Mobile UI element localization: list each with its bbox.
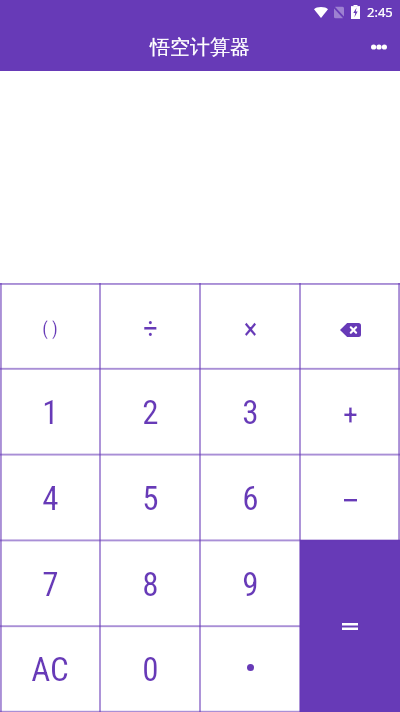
staticText: 2: [142, 393, 159, 432]
staticText: 3: [242, 393, 259, 432]
staticText: 6: [242, 479, 259, 518]
button[interactable]: 3: [200, 369, 300, 455]
button[interactable]: More options: [355, 23, 400, 70]
button[interactable]: Backspace: [300, 283, 400, 369]
button[interactable]: Divide: [100, 283, 200, 369]
staticText: 4: [42, 479, 59, 518]
staticText: 1: [42, 393, 59, 432]
button[interactable]: 5: [100, 455, 200, 541]
staticText: 2:45: [367, 3, 393, 21]
button[interactable]: 6: [200, 455, 300, 541]
button[interactable]: 0: [100, 627, 200, 712]
button[interactable]: Parentheses: [0, 283, 100, 369]
button[interactable]: 9: [200, 541, 300, 627]
staticText: +: [343, 397, 358, 432]
button[interactable]: 7: [0, 541, 100, 627]
staticText: ÷: [143, 311, 158, 346]
button[interactable]: Multiply: [200, 283, 300, 369]
staticText: 8: [142, 565, 159, 604]
staticText: 悟空计算器: [150, 35, 250, 60]
button[interactable]: AC: [0, 627, 100, 712]
staticText: 7: [42, 565, 59, 604]
button[interactable]: Decimal point: [200, 627, 300, 712]
staticText: ×: [243, 311, 258, 346]
button[interactable]: 2: [100, 369, 200, 455]
button[interactable]: 8: [100, 541, 200, 627]
button[interactable]: Equals: [300, 540, 400, 712]
staticText: 9: [242, 565, 259, 604]
staticText: 5: [142, 479, 159, 518]
button[interactable]: 4: [0, 455, 100, 541]
button[interactable]: Plus: [300, 369, 400, 455]
staticText: 0: [142, 650, 159, 689]
button[interactable]: 1: [0, 369, 100, 455]
staticText: AC: [31, 650, 69, 689]
staticText: ( ): [42, 318, 58, 339]
button[interactable]: Minus: [300, 455, 400, 541]
